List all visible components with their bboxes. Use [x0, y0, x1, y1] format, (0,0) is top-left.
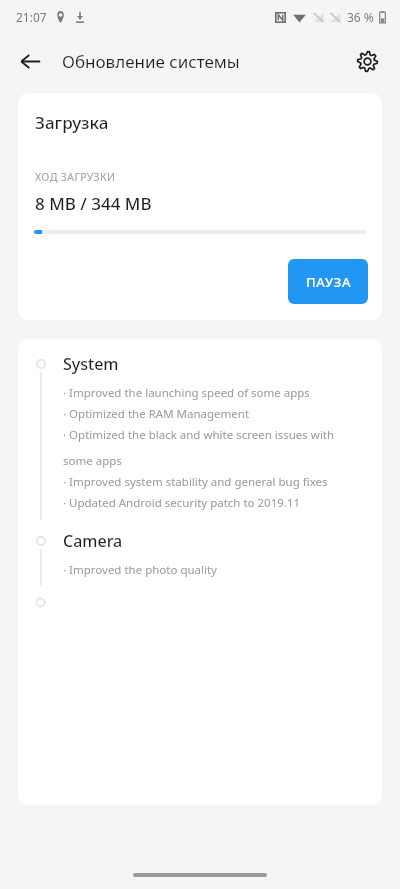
button[interactable]: ПАУЗА — [288, 259, 368, 304]
button[interactable]: Назад — [9, 40, 51, 82]
staticText: ПАУЗА — [306, 273, 351, 291]
staticText: Обновление системы — [62, 50, 240, 73]
staticText: 21:07 — [16, 9, 47, 25]
staticText: · Improved system stability and general … — [63, 474, 328, 490]
staticText: 8 MB / 344 MB — [35, 192, 152, 215]
staticText: · Optimized the RAM Management — [63, 406, 250, 422]
staticText: · Improved the photo quality — [63, 562, 217, 578]
button[interactable]: Загрузка — [18, 93, 382, 320]
staticText: · Optimized the black and white screen i… — [63, 427, 366, 469]
button[interactable]: System — [18, 339, 382, 805]
staticText: Загрузка — [35, 111, 109, 134]
staticText: System — [63, 353, 119, 375]
staticText: · Improved the launching speed of some a… — [63, 385, 310, 401]
staticText: · Updated Android security patch to 2019… — [63, 495, 301, 511]
button[interactable]: Настройки — [346, 40, 388, 82]
staticText: ХОД ЗАГРУЗКИ — [35, 170, 116, 184]
staticText: Camera — [63, 530, 123, 552]
staticText: 36 % — [347, 9, 374, 25]
